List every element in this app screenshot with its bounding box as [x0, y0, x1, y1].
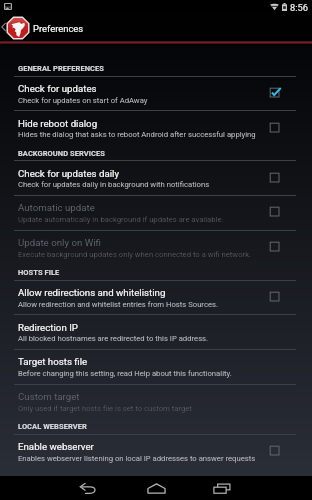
- staticText: Preferences: [33, 23, 84, 34]
- staticText: Check for updates on start of AdAway: [18, 96, 148, 105]
- button[interactable]: Back: [64, 476, 112, 500]
- button[interactable]: Navigate up, Preferences: [0, 13, 312, 41]
- button[interactable]: [0, 76, 312, 111]
- staticText: Redirection IP: [18, 322, 78, 333]
- staticText: Check for updates: [18, 83, 97, 94]
- staticText: Execute background updates only when con…: [18, 250, 252, 259]
- button[interactable]: Home: [132, 476, 180, 500]
- staticText: Enable webserver: [18, 441, 94, 452]
- button[interactable]: [0, 314, 312, 349]
- staticText: 8:56: [290, 2, 308, 13]
- staticText: Allow redirections and whitelisting: [18, 287, 166, 298]
- staticText: Update automatically in background if up…: [18, 215, 224, 224]
- button: [0, 195, 312, 230]
- staticText: Custom target: [18, 391, 80, 402]
- button[interactable]: [0, 349, 312, 384]
- staticText: GENERAL PREFERENCES: [18, 64, 104, 73]
- button[interactable]: Recent apps: [198, 476, 246, 500]
- button[interactable]: [0, 160, 312, 195]
- staticText: Update only on Wifi: [18, 237, 101, 248]
- button: [0, 384, 312, 419]
- staticText: Allow redirection and whitelist entries …: [18, 300, 218, 309]
- staticText: Check for updates daily in background wi…: [18, 180, 210, 189]
- staticText: Hide reboot dialog: [18, 118, 98, 129]
- staticText: Hides the dialog that asks to reboot And…: [18, 130, 256, 139]
- staticText: Check for updates daily: [18, 168, 119, 179]
- staticText: HOSTS FILE: [18, 268, 60, 277]
- staticText: Target hosts file: [18, 356, 88, 367]
- button[interactable]: [0, 434, 312, 469]
- staticText: Enables webserver listening on local IP …: [18, 454, 256, 463]
- staticText: Automatic update: [18, 202, 95, 213]
- staticText: All blocked hostnames are redirected to …: [18, 334, 209, 343]
- staticText: LOCAL WEBSERVER: [18, 422, 87, 431]
- button: [0, 230, 312, 265]
- staticText: Before changing this setting, read Help …: [18, 369, 232, 378]
- button[interactable]: [0, 280, 312, 315]
- staticText: Only used if target hosts file is set to…: [18, 404, 192, 413]
- staticText: BACKGROUND SERVICES: [18, 149, 105, 158]
- button[interactable]: [0, 110, 312, 145]
